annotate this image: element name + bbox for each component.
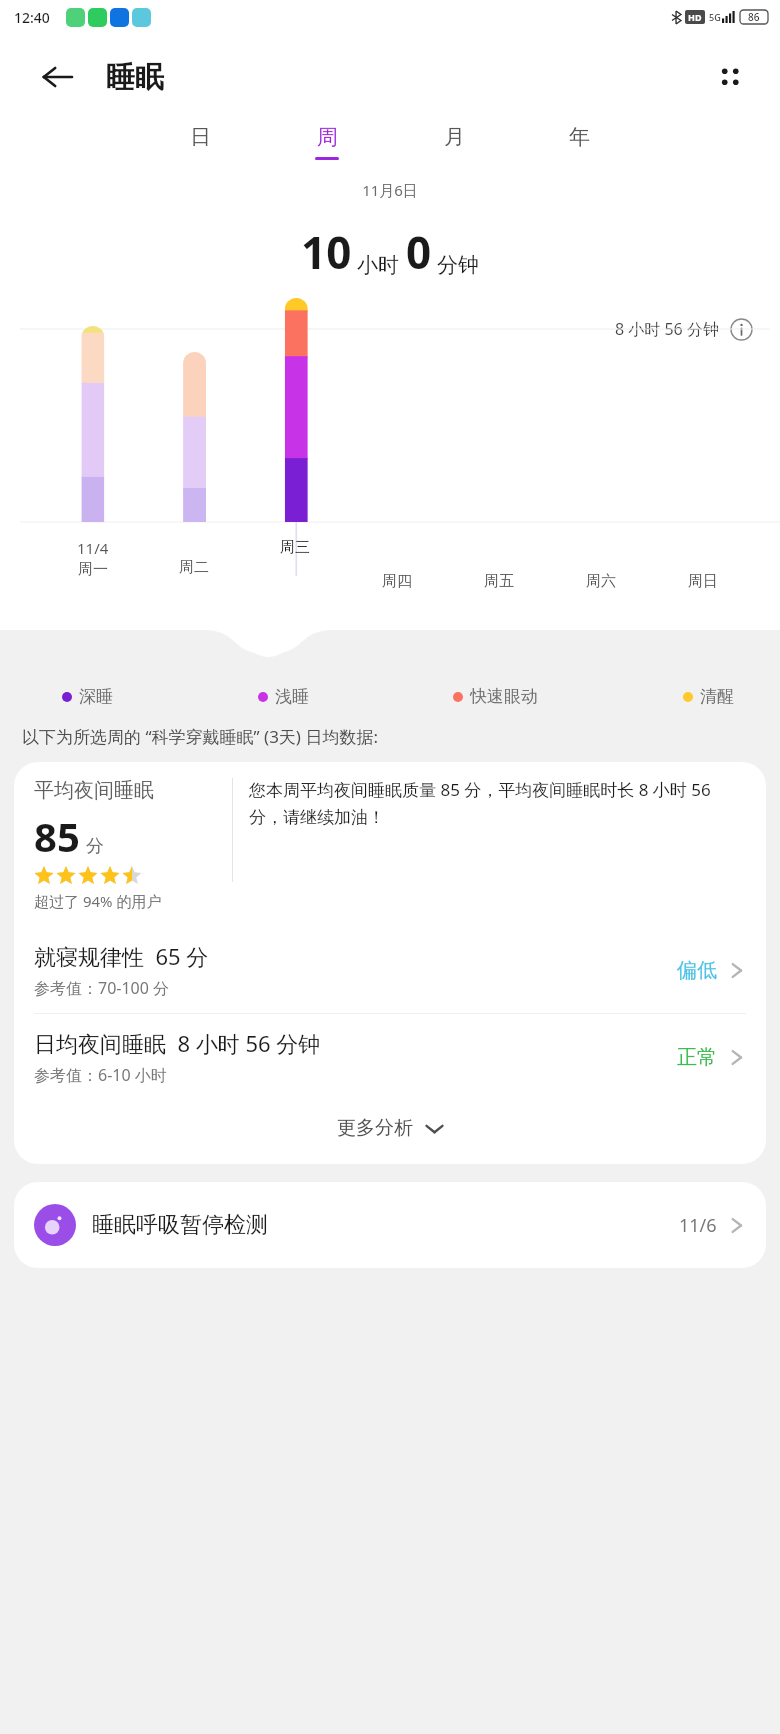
button[interactable]: 月 — [434, 120, 475, 164]
staticText: 0 — [406, 222, 432, 282]
staticText: 86 — [748, 10, 760, 24]
staticText: 周六 — [586, 572, 616, 591]
staticText: 11/6 — [679, 1213, 717, 1238]
staticText: 周日 — [688, 572, 718, 591]
staticText: 分 — [86, 835, 104, 858]
staticText: 周五 — [484, 572, 514, 591]
staticText: 8 小时 56 分钟 — [615, 318, 719, 340]
staticText: 参考值：6-10 小时 — [34, 1064, 167, 1086]
button[interactable]: 就寝规律性 65 分 — [34, 927, 746, 1013]
staticText: 年 — [569, 124, 590, 150]
staticText: 11月6日 — [0, 180, 780, 200]
staticText: 正常 — [677, 1045, 717, 1070]
staticText: 睡眠 — [106, 59, 164, 96]
staticText: 小时 — [357, 252, 399, 278]
staticText: 快速眼动 — [470, 686, 538, 707]
button[interactable]: 日 — [180, 120, 221, 164]
staticText: 周二 — [179, 558, 209, 577]
staticText: 85 — [34, 809, 80, 863]
staticText: 12:40 — [14, 8, 50, 27]
staticText: 以下为所选周的 “科学穿戴睡眠” (3天) 日均数据: — [22, 725, 378, 748]
staticText: 深睡 — [79, 686, 113, 707]
staticText: HD — [688, 11, 702, 23]
staticText: 日均夜间睡眠 8 小时 56 分钟 — [34, 1028, 321, 1058]
button[interactable]: Info — [728, 316, 754, 342]
staticText: 超过了 94% 的用户 — [34, 891, 162, 911]
staticText: 平均夜间睡眠 — [34, 778, 154, 803]
staticText: 更多分析 — [337, 1116, 413, 1140]
staticText: 参考值：70-100 分 — [34, 977, 170, 999]
button[interactable]: Back — [34, 54, 80, 100]
staticText: 月 — [444, 124, 465, 150]
staticText: 您本周平均夜间睡眠质量 85 分，平均夜间睡眠时长 8 小时 56 分，请继续加… — [249, 778, 746, 828]
staticText: 分钟 — [437, 252, 479, 278]
button[interactable]: 更多分析 — [34, 1108, 746, 1148]
staticText: 周四 — [382, 572, 412, 591]
staticText: 浅睡 — [275, 686, 309, 707]
button[interactable]: 年 — [559, 120, 600, 164]
staticText: 周三 — [280, 538, 310, 557]
staticText: 偏低 — [677, 958, 717, 983]
button[interactable]: More options — [706, 53, 754, 101]
staticText: 就寝规律性 65 分 — [34, 941, 209, 971]
staticText: 周 — [317, 124, 338, 150]
button[interactable]: 睡眠呼吸暂停检测 — [14, 1182, 766, 1268]
button[interactable]: 日均夜间睡眠 8 小时 56 分钟 — [34, 1014, 746, 1100]
staticText: 5G — [709, 11, 721, 23]
staticText: 清醒 — [700, 686, 734, 707]
button[interactable]: 周 — [305, 120, 349, 164]
staticText: 10 — [301, 222, 352, 282]
staticText: 睡眠呼吸暂停检测 — [92, 1211, 679, 1239]
staticText: 日 — [190, 124, 211, 150]
staticText: 11/4 — [77, 538, 109, 558]
staticText: 周一 — [78, 560, 108, 579]
